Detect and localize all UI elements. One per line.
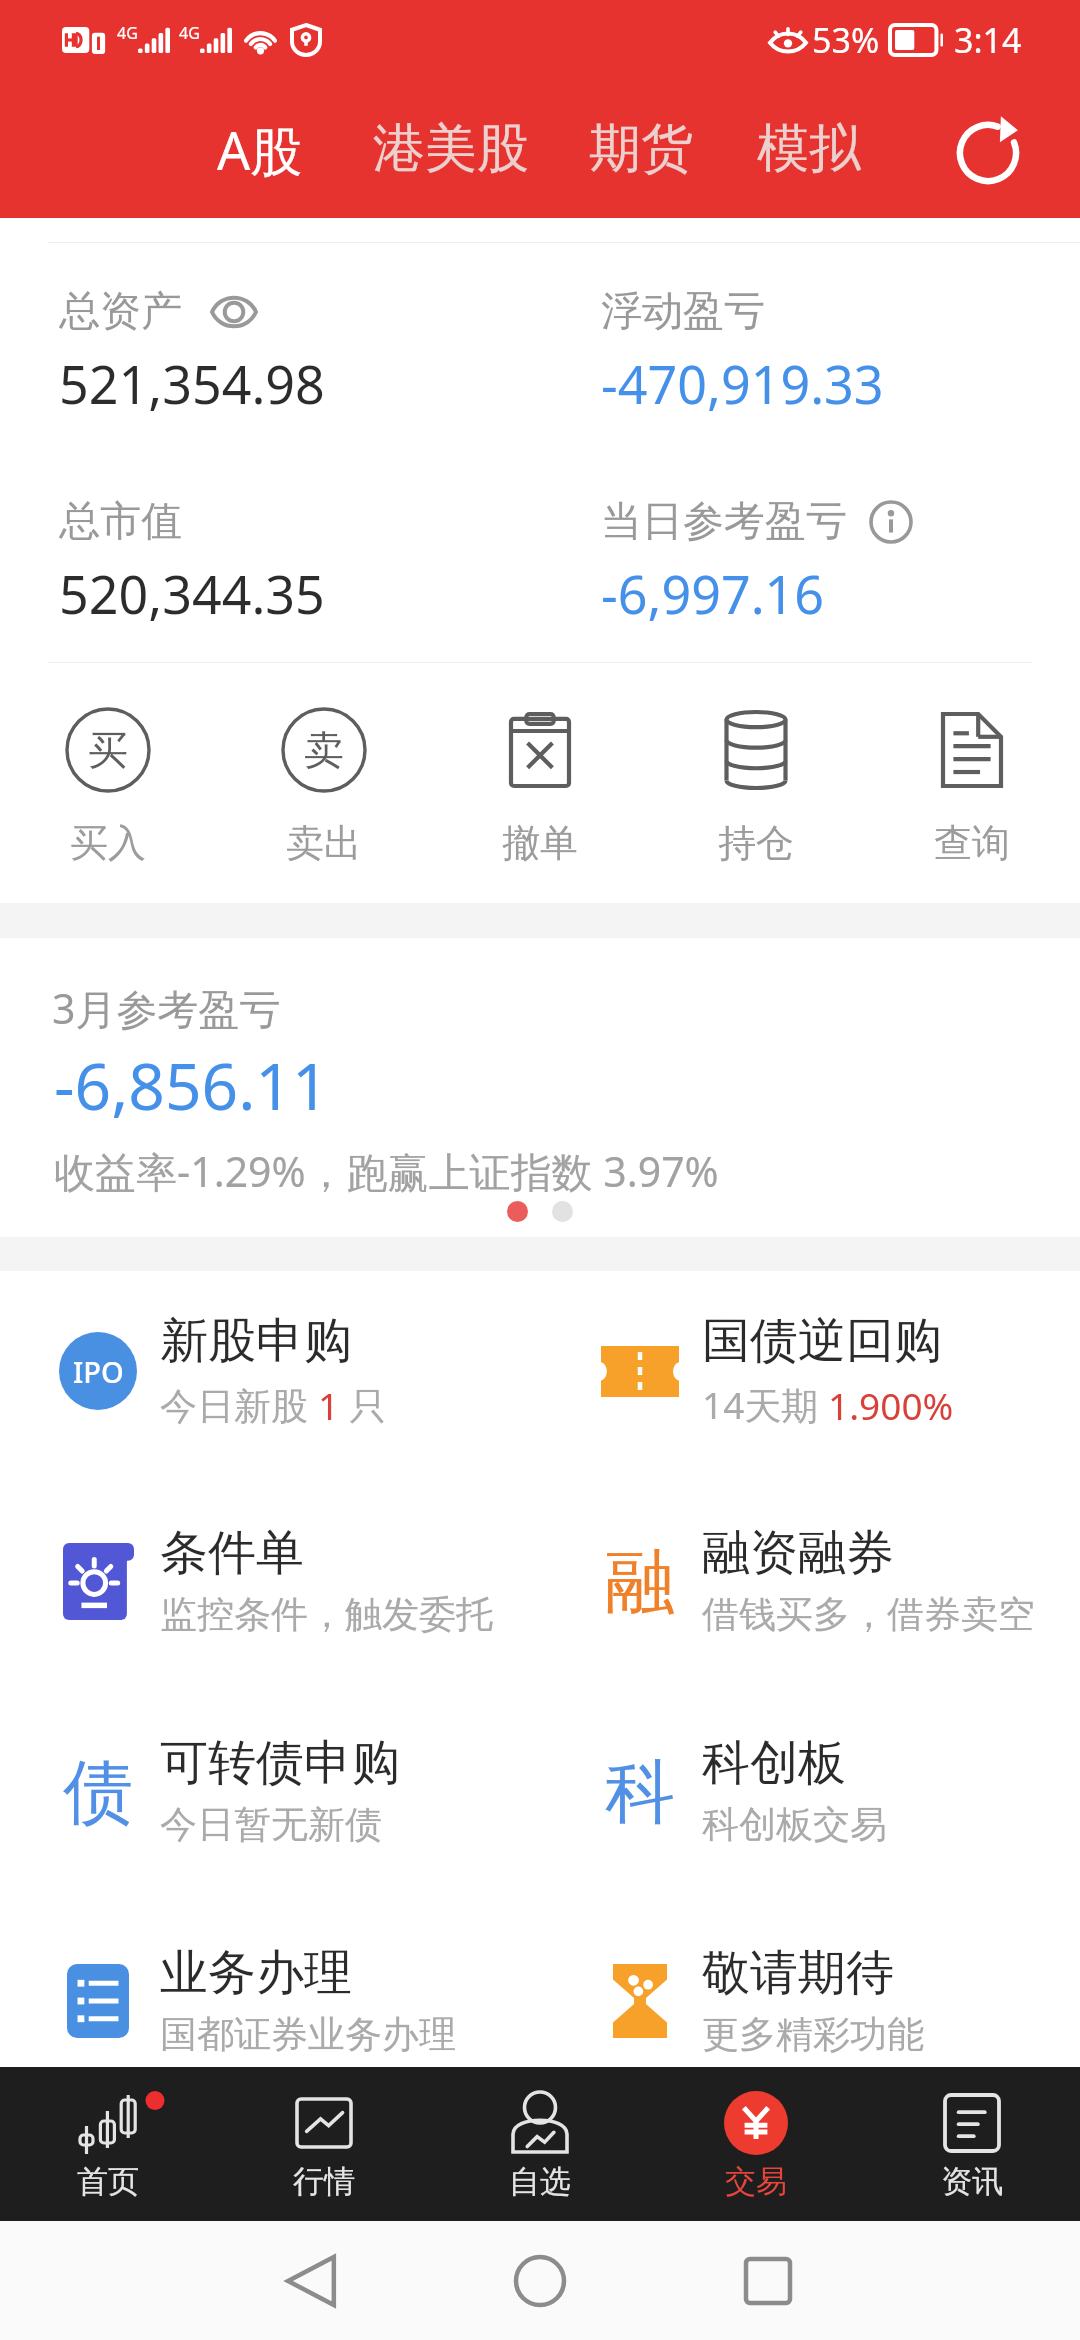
- staticText: 科创板: [702, 1733, 846, 1793]
- button[interactable]: 查询: [864, 705, 1080, 867]
- button[interactable]: 撤单: [432, 705, 648, 867]
- staticText: 3月参考盈亏: [52, 980, 281, 1036]
- staticText: 1.900%: [828, 1380, 954, 1430]
- staticText: 总市值: [59, 496, 182, 548]
- button[interactable]: 资讯: [864, 2088, 1080, 2201]
- staticText: 新股申购: [160, 1311, 352, 1371]
- staticText: 科创板交易: [702, 1801, 887, 1848]
- staticText: 今日暂无新债: [160, 1801, 382, 1848]
- button[interactable]: 期货: [589, 116, 693, 182]
- staticText: -6,997.16: [601, 558, 825, 629]
- staticText: 53%: [812, 17, 880, 63]
- button[interactable]: 敬请期待: [598, 1943, 1080, 2058]
- staticText: 4G: [117, 22, 138, 44]
- staticText: 科: [605, 1749, 675, 1833]
- button[interactable]: A股: [217, 114, 303, 185]
- staticText: 首页: [77, 2162, 139, 2201]
- staticText: 浮动盈亏: [601, 286, 765, 338]
- staticText: 14天期: [702, 1379, 828, 1430]
- staticText: 融资融券: [702, 1523, 894, 1583]
- button[interactable]: 模拟: [757, 116, 861, 182]
- staticText: -470,919.33: [601, 348, 884, 419]
- staticText: 收益率-1.29%，跑赢上证指数 3.97%: [54, 1143, 719, 1199]
- staticText: 期货: [589, 116, 693, 182]
- staticText: 港美股: [373, 116, 529, 182]
- staticText: 今日新股: [160, 1379, 318, 1430]
- button[interactable]: Information: [867, 498, 915, 546]
- staticText: 可转债申购: [160, 1733, 400, 1793]
- button[interactable]: 自选: [432, 2088, 648, 2201]
- button[interactable]: 买: [0, 705, 216, 867]
- staticText: 卖出: [286, 819, 362, 867]
- staticText: 1: [318, 1380, 340, 1430]
- staticText: 3:14: [954, 17, 1022, 63]
- button[interactable]: 3月参考盈亏: [0, 938, 1080, 1237]
- staticText: A股: [217, 114, 303, 185]
- button[interactable]: IPO: [56, 1311, 540, 1430]
- button[interactable]: 首页: [0, 2088, 216, 2201]
- staticText: 国都证券业务办理: [160, 2011, 456, 2058]
- staticText: 撤单: [502, 819, 578, 867]
- staticText: -6,856.11: [54, 1042, 329, 1129]
- button[interactable]: 融: [598, 1523, 1080, 1638]
- button[interactable]: 国债逆回购: [598, 1311, 1080, 1430]
- staticText: 监控条件，触发委托: [160, 1591, 493, 1638]
- staticText: 521,354.98: [59, 348, 325, 419]
- staticText: 债: [63, 1749, 133, 1833]
- staticText: 融: [605, 1539, 675, 1623]
- staticText: 自选: [509, 2162, 571, 2201]
- staticText: 买: [88, 725, 128, 775]
- staticText: 持仓: [718, 819, 794, 867]
- staticText: 行情: [293, 2162, 355, 2201]
- button[interactable]: Back: [277, 2246, 347, 2316]
- button[interactable]: 交易: [648, 2088, 864, 2201]
- staticText: 业务办理: [160, 1943, 352, 2003]
- staticText: 买入: [70, 819, 146, 867]
- button[interactable]: 业务办理: [56, 1943, 540, 2058]
- staticText: 更多精彩功能: [702, 2011, 924, 2058]
- button[interactable]: Home: [505, 2246, 575, 2316]
- staticText: 模拟: [757, 116, 861, 182]
- staticText: IPO: [73, 1352, 124, 1391]
- button[interactable]: Recent apps: [733, 2246, 803, 2316]
- staticText: 交易: [725, 2162, 787, 2201]
- staticText: 条件单: [160, 1523, 304, 1583]
- button[interactable]: 卖: [216, 705, 432, 867]
- button[interactable]: 持仓: [648, 705, 864, 867]
- staticText: 520,344.35: [59, 558, 325, 629]
- button[interactable]: 港美股: [373, 116, 529, 182]
- staticText: 当日参考盈亏: [601, 496, 847, 548]
- button[interactable]: 债: [56, 1733, 540, 1848]
- button[interactable]: 科: [598, 1733, 1080, 1848]
- staticText: 查询: [934, 819, 1010, 867]
- staticText: 借钱买多，借券卖空: [702, 1591, 1035, 1638]
- staticText: 卖: [304, 725, 344, 775]
- staticText: 国债逆回购: [702, 1311, 942, 1371]
- button[interactable]: 行情: [216, 2088, 432, 2201]
- staticText: 4G: [179, 22, 200, 44]
- staticText: 总资产: [59, 286, 182, 338]
- button[interactable]: 条件单: [56, 1523, 540, 1638]
- staticText: 资讯: [941, 2162, 1003, 2201]
- button[interactable]: Refresh: [954, 113, 1026, 185]
- staticText: 敬请期待: [702, 1943, 894, 2003]
- staticText: 只: [340, 1379, 387, 1430]
- button[interactable]: Toggle amount visibility: [208, 292, 260, 332]
